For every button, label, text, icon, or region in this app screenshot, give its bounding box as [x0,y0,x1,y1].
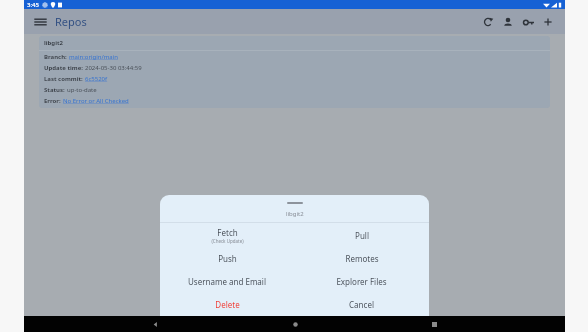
button[interactable]: Username and Email [160,270,294,293]
button[interactable]: Credentials [518,12,538,32]
staticText: Explorer Files [336,276,387,287]
button[interactable]: Fetch [160,223,294,247]
staticText: Repos [55,14,87,29]
staticText: Delete [215,299,240,310]
staticText: Status: [44,86,67,94]
staticText: Error: [44,97,63,105]
staticText: Remotes [345,253,379,264]
staticText: Update time: [44,64,85,72]
button[interactable]: Open navigation drawer [31,13,49,31]
staticText: Cancel [349,299,374,310]
staticText: up-to-date [67,86,97,94]
button[interactable]: Delete [160,293,294,316]
staticText: Branch: [44,53,69,61]
staticText: Push [218,253,237,264]
staticText: Fetch [217,227,238,238]
button[interactable]: 6c5520f [85,75,108,83]
button[interactable]: Home [287,316,303,332]
button[interactable]: Pull [294,223,429,247]
staticText: 3:45 [27,1,39,9]
staticText: No Error or All Checked [63,97,129,105]
staticText: Pull [355,230,369,241]
staticText: Last commit: [44,75,85,83]
staticText: 6c5520f [85,75,108,83]
button[interactable]: libgit2 [39,36,550,108]
button[interactable]: Account [498,12,518,32]
staticText: (Check Update) [211,238,244,244]
button[interactable]: Recent apps [426,316,442,332]
button[interactable]: main:origin/main [69,53,118,61]
staticText: libgit2 [44,39,63,47]
button[interactable]: Remotes [294,247,429,270]
staticText: libgit2 [286,210,304,218]
button[interactable]: Push [160,247,294,270]
button[interactable]: No Error or All Checked [63,97,129,105]
button[interactable]: Explorer Files [294,270,429,293]
button[interactable]: Add repository [538,12,558,32]
button[interactable]: Cancel [294,293,429,316]
button[interactable]: Refresh [478,12,498,32]
staticText: main:origin/main [69,53,118,61]
button[interactable]: Drag handle [287,202,303,204]
button[interactable]: Back [147,316,163,332]
staticText: 2024-05-30 03:44:59 [85,64,142,72]
staticText: Username and Email [188,276,266,287]
